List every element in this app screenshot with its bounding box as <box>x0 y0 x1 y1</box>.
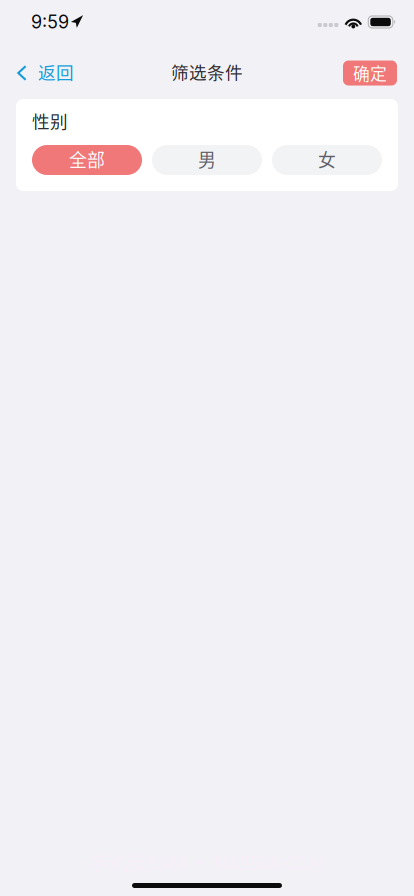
staticText: 性别 <box>32 108 68 133</box>
staticText: 返回 <box>38 59 74 84</box>
button[interactable]: 返回 <box>0 53 88 93</box>
staticText: 男 <box>198 146 216 172</box>
staticText: 筛选条件 <box>171 59 243 84</box>
staticText: 女 <box>318 146 336 172</box>
button[interactable]: 全部 <box>32 145 142 175</box>
button[interactable]: 男 <box>152 145 262 175</box>
staticText: 9:59 <box>31 11 69 33</box>
button[interactable]: 女 <box>272 145 382 175</box>
staticText: 确定 <box>353 61 387 85</box>
staticText: 全部 <box>69 146 105 172</box>
button[interactable]: 确定 <box>343 60 397 85</box>
